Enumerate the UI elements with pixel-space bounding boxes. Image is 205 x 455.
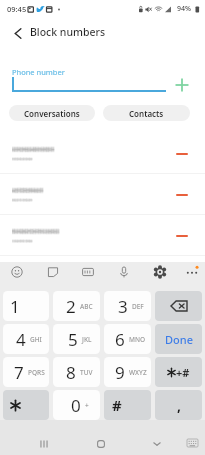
button[interactable]: Add from contacts [170, 73, 193, 96]
staticText: 4 [16, 328, 26, 351]
button[interactable]: Symbols [155, 357, 202, 387]
staticText: Phone number [12, 67, 65, 77]
button[interactable]: 1 [3, 291, 49, 321]
button[interactable]: Keyboard settings [149, 261, 171, 283]
staticText: # [112, 395, 122, 415]
staticText: 7 [14, 361, 24, 384]
staticText: 09:45 [7, 4, 27, 14]
button[interactable]: Stickers [42, 261, 64, 283]
staticText: 1 [10, 295, 20, 318]
staticText: GHI [30, 335, 42, 344]
staticText: Conversations [24, 108, 80, 119]
staticText: 5 [68, 328, 78, 351]
staticText: JKL [82, 335, 92, 344]
staticText: 94% [177, 4, 191, 14]
staticText: PQRS [28, 368, 45, 377]
staticText: 3 [118, 295, 128, 318]
button[interactable]: Unblock number [0, 133, 205, 174]
button[interactable]: 5 [53, 324, 100, 354]
staticText: 9 [115, 361, 125, 384]
staticText: Done [165, 332, 193, 347]
staticText: + [85, 401, 89, 410]
button[interactable]: Unblock number [172, 144, 192, 164]
button[interactable]: Done [155, 324, 202, 354]
button[interactable]: 9 [104, 357, 151, 387]
button[interactable]: GIF keyboard [77, 261, 99, 283]
staticText: 8 [66, 361, 76, 384]
button[interactable]: 4 [3, 324, 49, 354]
button[interactable]: 8 [53, 357, 100, 387]
button[interactable]: 7 [3, 357, 49, 387]
button[interactable]: Hash [104, 390, 151, 420]
button[interactable]: Star [3, 390, 49, 420]
button[interactable]: More keyboard options [181, 261, 203, 283]
button[interactable]: Backspace [155, 291, 202, 321]
button[interactable]: Unblock number [0, 215, 205, 256]
button[interactable]: Unblock number [0, 174, 205, 215]
staticText: MNO [129, 335, 146, 344]
button[interactable]: Comma [155, 390, 202, 420]
button[interactable]: Unblock number [172, 185, 192, 205]
button[interactable]: Voice input [113, 261, 135, 283]
staticText: TUV [80, 368, 93, 377]
button[interactable]: Recent apps [33, 433, 55, 455]
staticText: Contacts [129, 108, 164, 119]
staticText: WXYZ [129, 368, 147, 377]
button[interactable]: Contacts [103, 105, 190, 121]
button[interactable]: Navigate up [5, 20, 31, 46]
button[interactable]: Conversations [9, 105, 95, 121]
button[interactable]: 2 [53, 291, 100, 321]
staticText: +# [176, 365, 190, 380]
staticText: Block numbers [30, 25, 106, 39]
staticText: ABC [80, 302, 93, 311]
button[interactable]: Change keyboard [182, 433, 202, 453]
button[interactable]: 6 [104, 324, 151, 354]
button[interactable]: Home [90, 433, 112, 455]
button[interactable]: Emoji [6, 261, 28, 283]
button[interactable]: Hide keyboard [146, 433, 168, 455]
staticText: 2 [66, 295, 76, 318]
staticText: DEF [132, 302, 144, 311]
staticText: 0 [71, 394, 81, 417]
staticText: , [177, 396, 181, 415]
button[interactable]: Unblock number [172, 226, 192, 246]
button[interactable]: 3 [104, 291, 151, 321]
staticText: 6 [115, 328, 125, 351]
button[interactable]: 0 [53, 390, 100, 420]
